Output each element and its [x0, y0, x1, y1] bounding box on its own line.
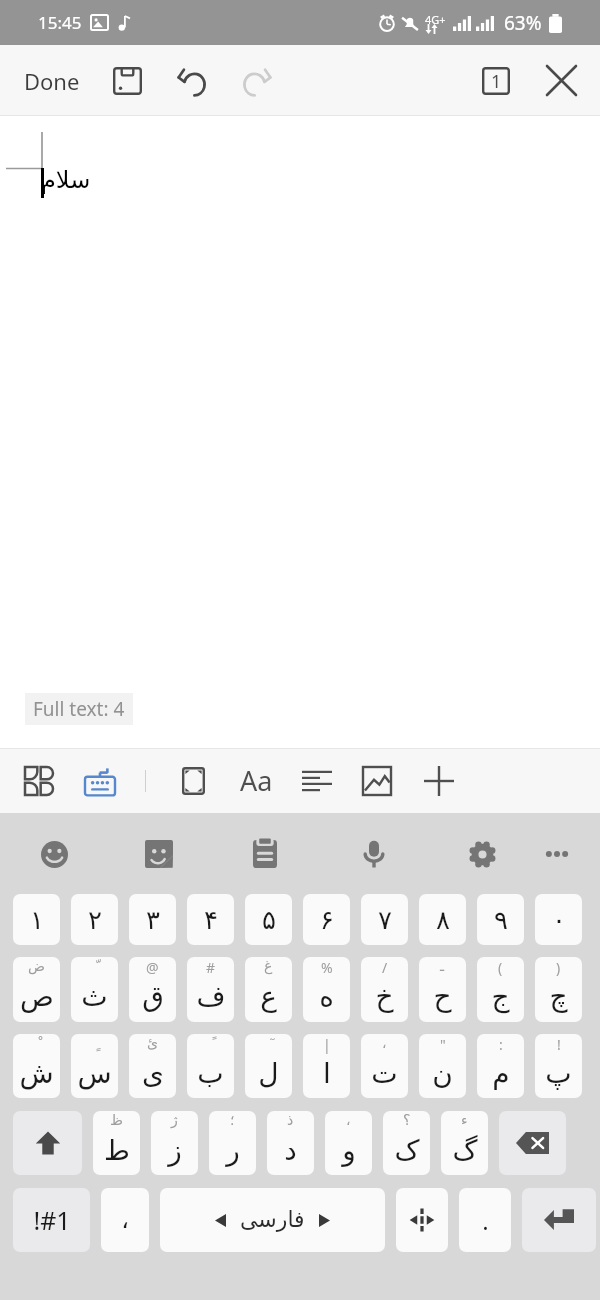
button[interactable]: (: [477, 957, 524, 1022]
button[interactable]: More options: [530, 827, 584, 881]
button[interactable]: Apps: [15, 748, 63, 813]
button[interactable]: Move cursor: [396, 1188, 448, 1252]
button[interactable]: Redo: [231, 45, 283, 116]
button[interactable]: Done: [14, 45, 89, 116]
button[interactable]: ،: [101, 1188, 149, 1252]
staticText: و: [342, 1134, 356, 1167]
button[interactable]: ْ: [13, 1034, 60, 1098]
staticText: @: [146, 958, 159, 977]
button[interactable]: ۷: [361, 894, 408, 945]
button[interactable]: ء: [441, 1111, 488, 1175]
staticText: 4G+: [425, 12, 446, 27]
button[interactable]: Insert image: [353, 748, 401, 813]
staticText: ۳: [146, 905, 160, 935]
staticText: ر: [226, 1134, 240, 1167]
button[interactable]: Undo: [166, 45, 218, 116]
button[interactable]: Symbols: [13, 1188, 90, 1252]
staticText: ن: [432, 1057, 453, 1090]
button[interactable]: غ: [245, 957, 292, 1022]
staticText: ج: [491, 980, 510, 1013]
button[interactable]: Keyboard settings: [455, 827, 509, 881]
button[interactable]: ژ: [151, 1111, 198, 1175]
staticText: ): [556, 958, 561, 977]
staticText: ۲: [88, 905, 102, 935]
button[interactable]: @: [129, 957, 176, 1022]
staticText: ب: [197, 1057, 224, 1090]
staticText: ژ: [171, 1112, 178, 1128]
button[interactable]: ؟: [383, 1111, 430, 1175]
staticText: !: [557, 1035, 561, 1054]
staticText: Full text: 4: [33, 696, 125, 722]
button[interactable]: ۱: [13, 894, 60, 945]
button[interactable]: :: [477, 1034, 524, 1098]
button[interactable]: Emoji: [27, 827, 81, 881]
button[interactable]: ض: [13, 957, 60, 1022]
button[interactable]: Backspace: [499, 1111, 566, 1175]
staticText: ذ: [287, 1112, 294, 1128]
staticText: ،: [346, 1112, 351, 1128]
staticText: ۸: [436, 905, 450, 935]
button[interactable]: Clipboard: [238, 827, 292, 881]
staticText: چ: [549, 980, 568, 1013]
button[interactable]: ،: [361, 1034, 408, 1098]
button[interactable]: ـ: [419, 957, 466, 1022]
staticText: ۷: [378, 905, 392, 935]
button[interactable]: %: [303, 957, 350, 1022]
button[interactable]: Enter: [522, 1188, 596, 1252]
staticText: ـ: [440, 958, 445, 974]
button[interactable]: Add: [415, 748, 463, 813]
button[interactable]: ": [419, 1034, 466, 1098]
staticText: ؟: [403, 1112, 411, 1128]
staticText: ص: [20, 980, 54, 1013]
button[interactable]: Voice input: [347, 827, 401, 881]
staticText: ح: [433, 980, 452, 1013]
button[interactable]: ً: [187, 1034, 234, 1098]
button[interactable]: Shift: [13, 1111, 82, 1175]
button[interactable]: Save: [101, 45, 153, 116]
staticText: ظ: [110, 1112, 123, 1128]
button[interactable]: ۵: [245, 894, 292, 945]
staticText: ۱: [30, 905, 44, 935]
button[interactable]: ٓ: [245, 1034, 292, 1098]
staticText: ء: [461, 1112, 468, 1128]
button[interactable]: ئ: [129, 1034, 176, 1098]
button[interactable]: Keyboard: [76, 748, 124, 813]
staticText: د: [284, 1134, 297, 1167]
button[interactable]: ۴: [187, 894, 234, 945]
button[interactable]: /: [361, 957, 408, 1022]
staticText: #: [206, 958, 216, 977]
button[interactable]: Page setup: [169, 748, 217, 813]
button[interactable]: Close: [535, 45, 587, 116]
button[interactable]: ۳: [129, 894, 176, 945]
staticText: (: [498, 958, 503, 977]
button[interactable]: ۹: [477, 894, 524, 945]
staticText: ف: [196, 980, 226, 1013]
button[interactable]: !: [535, 1034, 582, 1098]
staticText: ۵: [262, 905, 276, 935]
button[interactable]: |: [303, 1034, 350, 1098]
button[interactable]: ٍ: [71, 1034, 118, 1098]
button[interactable]: ،: [325, 1111, 372, 1175]
button[interactable]: ذ: [267, 1111, 314, 1175]
button[interactable]: Text style: [232, 748, 280, 813]
button[interactable]: .: [459, 1188, 511, 1252]
button[interactable]: ّ: [71, 957, 118, 1022]
button[interactable]: Stickers: [132, 827, 186, 881]
button[interactable]: #: [187, 957, 234, 1022]
button[interactable]: ۶: [303, 894, 350, 945]
staticText: ؛: [230, 1112, 235, 1128]
staticText: ض: [28, 958, 45, 974]
button[interactable]: Alignment: [293, 748, 341, 813]
button[interactable]: ۰: [535, 894, 582, 945]
button[interactable]: ): [535, 957, 582, 1022]
button[interactable]: ۲: [71, 894, 118, 945]
button[interactable]: ۸: [419, 894, 466, 945]
button[interactable]: ؛: [209, 1111, 256, 1175]
button[interactable]: ظ: [93, 1111, 140, 1175]
button[interactable]: Space, Persian: [160, 1188, 385, 1252]
staticText: ع: [260, 980, 277, 1013]
staticText: ئ: [147, 1035, 158, 1051]
staticText: ق: [142, 980, 164, 1013]
staticText: ت: [371, 1057, 398, 1090]
button[interactable]: Page count: [470, 45, 522, 116]
